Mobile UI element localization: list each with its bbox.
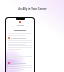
staticText: An Ally in Your Corner	[18, 7, 47, 11]
button[interactable]: An Ally in Your Corner	[0, 0, 64, 17]
